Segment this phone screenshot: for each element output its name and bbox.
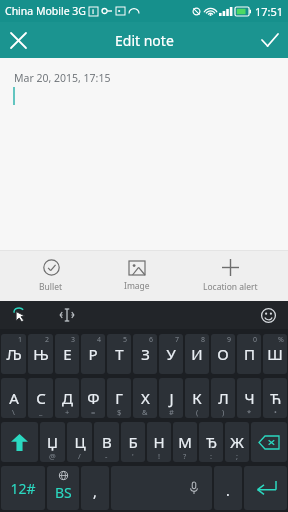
staticText: Ђ (206, 432, 217, 452)
button[interactable]: 6 (133, 334, 157, 374)
button[interactable]: : (199, 422, 223, 462)
staticText: Џ (47, 432, 58, 452)
staticText: Е (63, 344, 72, 364)
button[interactable]: ! (147, 422, 171, 462)
staticText: ! (158, 451, 161, 461)
staticText: ) (222, 407, 225, 417)
button[interactable]: = (81, 378, 105, 418)
staticText: У (166, 344, 176, 364)
button[interactable] (1, 422, 38, 462)
staticText: \ (12, 407, 15, 417)
staticText: Edit note (115, 31, 174, 50)
staticText: М (178, 432, 192, 452)
staticText: Ј (169, 388, 174, 408)
staticText: Ч (244, 388, 255, 408)
staticText: BS (55, 483, 72, 502)
button[interactable] (251, 422, 287, 462)
button[interactable]: 8 (185, 334, 209, 374)
staticText: . (226, 481, 230, 500)
button[interactable]: 0 (237, 334, 261, 374)
button[interactable]: _ (28, 378, 53, 418)
staticText: Ж (230, 432, 244, 452)
staticText: 9 (227, 335, 232, 345)
staticText: 12# (10, 479, 36, 498)
button[interactable]: & (133, 378, 157, 418)
staticText: 3 (71, 335, 76, 345)
staticText: Б (128, 432, 138, 452)
button[interactable]: • (263, 378, 287, 418)
button[interactable]: 1 (1, 334, 26, 374)
staticText: 0 (253, 335, 258, 345)
button[interactable]: Location alert (180, 251, 280, 301)
button[interactable]: Cursor control (10, 305, 30, 325)
button[interactable] (111, 466, 212, 510)
staticText: $ (117, 407, 122, 417)
button[interactable]: @ (40, 422, 65, 462)
button[interactable]: ' (121, 422, 145, 462)
staticText: + (65, 407, 70, 417)
button[interactable]: # (159, 378, 183, 418)
staticText: Р (88, 344, 98, 364)
staticText: Л (218, 388, 229, 408)
button[interactable]: Close (0, 22, 36, 58)
staticText: З (141, 344, 150, 364)
button[interactable]: 7 (159, 334, 183, 374)
staticText: Д (62, 388, 73, 408)
button[interactable]: Bullet (8, 251, 94, 301)
staticText: # (169, 407, 174, 417)
button[interactable]: / (67, 422, 92, 462)
button[interactable] (244, 466, 287, 510)
button[interactable]: % (263, 334, 287, 374)
staticText: Њ (33, 344, 49, 364)
staticText: С (36, 388, 46, 408)
button[interactable]: 9 (211, 334, 235, 374)
staticText: 7 (175, 335, 180, 345)
staticText: 4 (97, 335, 102, 345)
button[interactable]: 2 (28, 334, 53, 374)
staticText: ' (132, 451, 134, 461)
button[interactable]: 12# (1, 466, 45, 510)
staticText: Н (153, 432, 165, 452)
button[interactable]: ; (225, 422, 249, 462)
staticText: • (274, 407, 277, 417)
staticText: Г (115, 388, 123, 408)
button[interactable]: . (214, 466, 242, 510)
button[interactable]: Emoji (258, 305, 278, 325)
button[interactable]: , (81, 466, 109, 510)
staticText: 1 (18, 335, 23, 345)
staticText: А (9, 388, 19, 408)
staticText: , (93, 482, 97, 501)
staticText: Ц (74, 432, 86, 452)
staticText: / (78, 451, 81, 461)
staticText: Image (124, 280, 150, 292)
staticText: О (217, 344, 229, 364)
staticText: : (210, 451, 213, 461)
button[interactable]: ( (185, 378, 209, 418)
staticText: ; (236, 451, 239, 461)
staticText: Љ (6, 344, 22, 364)
button[interactable]: - (94, 422, 119, 462)
button[interactable]: \ (1, 378, 26, 418)
button[interactable]: Move cursor (57, 305, 77, 325)
staticText: @ (49, 451, 56, 461)
staticText: * (247, 407, 252, 417)
button[interactable]: Save (252, 22, 288, 58)
staticText: Х (141, 388, 150, 408)
button[interactable]: + (55, 378, 79, 418)
staticText: - (105, 451, 108, 461)
button[interactable]: 3 (55, 334, 79, 374)
staticText: Ф (87, 388, 100, 408)
button[interactable]: ? (173, 422, 197, 462)
staticText: 5 (123, 335, 128, 345)
button[interactable]: 4 (81, 334, 105, 374)
button[interactable]: * (237, 378, 261, 418)
button[interactable]: $ (107, 378, 131, 418)
button[interactable]: Image (94, 251, 180, 301)
button[interactable]: ) (211, 378, 235, 418)
staticText: = (91, 407, 96, 417)
staticText: & (142, 407, 148, 417)
button[interactable]: 5 (107, 334, 131, 374)
staticText: China Mobile 3G (5, 4, 86, 18)
button[interactable]: BS (47, 466, 79, 510)
staticText: 6 (149, 335, 154, 345)
